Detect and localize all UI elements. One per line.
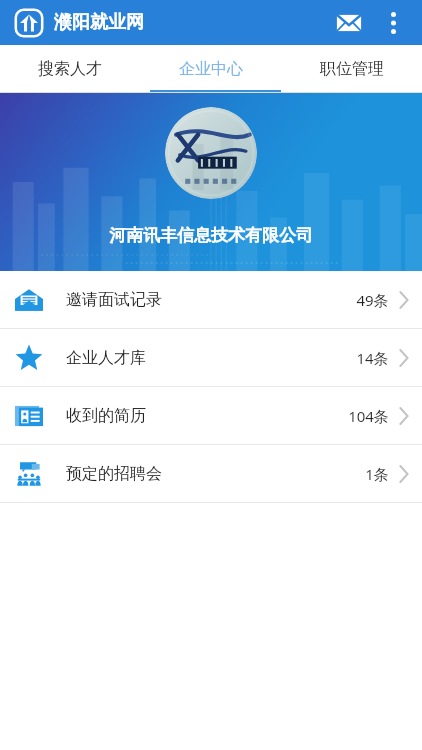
button[interactable]: More options [378,8,408,38]
button[interactable]: Home logo [14,8,44,38]
staticText: 104条 [348,406,389,426]
staticText: 搜索人才 [38,59,102,79]
staticText: 预定的招聘会 [66,464,162,484]
button[interactable]: 企业中心 [140,45,281,93]
button[interactable]: 预定的招聘会 [0,445,422,502]
button[interactable]: 职位管理 [281,45,422,93]
staticText: 职位管理 [320,59,384,79]
staticText: 企业中心 [179,59,243,79]
staticText: 1条 [365,464,389,484]
staticText: 河南讯丰信息技术有限公司 [109,225,313,246]
button[interactable]: Messages [332,6,366,40]
staticText: 濮阳就业网 [54,11,144,34]
button[interactable]: 搜索人才 [0,45,140,93]
button[interactable]: 收到的简历 [0,387,422,444]
staticText: 邀请面试记录 [66,290,162,310]
staticText: 收到的简历 [66,406,146,426]
staticText: 企业人才库 [66,348,146,368]
button[interactable]: 邀请面试记录 [0,271,422,328]
button[interactable]: 企业人才库 [0,329,422,386]
staticText: 14条 [356,348,389,368]
staticText: 49条 [356,290,389,310]
